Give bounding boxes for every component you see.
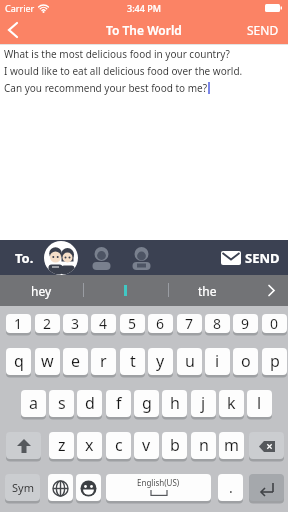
button[interactable]: p bbox=[262, 348, 287, 376]
button[interactable]: 0 bbox=[262, 314, 287, 334]
staticText: y bbox=[156, 350, 165, 372]
button[interactable]: . bbox=[218, 474, 243, 502]
button[interactable]: y bbox=[148, 348, 173, 376]
button[interactable] bbox=[268, 285, 275, 296]
button[interactable] bbox=[249, 432, 284, 460]
button[interactable]: the bbox=[168, 275, 246, 306]
button[interactable]: 7 bbox=[177, 314, 202, 334]
button[interactable]: r bbox=[91, 348, 116, 376]
staticText: d bbox=[85, 392, 95, 414]
staticText: j bbox=[201, 392, 206, 414]
button[interactable]: m bbox=[219, 432, 244, 460]
staticText: l bbox=[257, 392, 262, 414]
staticText: 4 bbox=[99, 314, 108, 333]
button[interactable]: 8 bbox=[205, 314, 230, 334]
staticText: Can you recommend your best food to me? bbox=[4, 81, 208, 95]
button[interactable] bbox=[76, 474, 101, 502]
staticText: h bbox=[170, 392, 180, 414]
button[interactable]: d bbox=[77, 390, 102, 418]
button[interactable] bbox=[91, 247, 112, 270]
staticText: To The World bbox=[106, 22, 182, 38]
staticText: the bbox=[198, 283, 217, 299]
staticText: 2 bbox=[43, 314, 52, 333]
staticText: SEND bbox=[245, 249, 280, 267]
button[interactable]: q bbox=[6, 348, 31, 376]
button[interactable]: 5 bbox=[120, 314, 145, 334]
button[interactable]: hey bbox=[0, 275, 83, 306]
button[interactable]: SEND bbox=[221, 249, 280, 267]
staticText: hey bbox=[31, 283, 52, 299]
staticText: f bbox=[116, 392, 122, 414]
button[interactable]: u bbox=[177, 348, 202, 376]
staticText: 7 bbox=[185, 314, 194, 333]
button[interactable]: English(US) bbox=[106, 474, 211, 502]
staticText: 5 bbox=[128, 314, 137, 333]
staticText: To. bbox=[15, 249, 34, 267]
staticText: 8 bbox=[213, 314, 222, 333]
staticText: What is the most delicious food in your … bbox=[4, 47, 230, 61]
button[interactable]: 9 bbox=[233, 314, 258, 334]
button[interactable]: l bbox=[247, 390, 272, 418]
button[interactable]: f bbox=[106, 390, 131, 418]
button[interactable]: v bbox=[134, 432, 159, 460]
button[interactable]: e bbox=[63, 348, 88, 376]
button[interactable]: SEND bbox=[247, 22, 279, 38]
staticText: Carrier bbox=[5, 2, 35, 14]
staticText: r bbox=[100, 350, 107, 372]
staticText: 6 bbox=[156, 314, 165, 333]
staticText: p bbox=[270, 350, 280, 372]
button[interactable]: h bbox=[162, 390, 187, 418]
button[interactable]: x bbox=[77, 432, 102, 460]
staticText: x bbox=[85, 434, 94, 456]
button[interactable] bbox=[8, 22, 18, 38]
button[interactable]: s bbox=[49, 390, 74, 418]
staticText: t bbox=[130, 350, 136, 372]
staticText: c bbox=[115, 434, 123, 456]
button[interactable]: 2 bbox=[35, 314, 60, 334]
button[interactable]: 4 bbox=[91, 314, 116, 334]
button[interactable]: t bbox=[120, 348, 145, 376]
button[interactable]: j bbox=[191, 390, 216, 418]
staticText: w bbox=[41, 350, 54, 372]
button[interactable]: 6 bbox=[148, 314, 173, 334]
button[interactable] bbox=[48, 474, 73, 502]
staticText: u bbox=[185, 350, 195, 372]
staticText: m bbox=[224, 434, 239, 456]
button[interactable]: 1 bbox=[6, 314, 31, 334]
staticText: b bbox=[170, 434, 180, 456]
staticText: I would like to eat all delicious food o… bbox=[4, 64, 243, 78]
staticText: k bbox=[227, 392, 236, 414]
button[interactable]: k bbox=[219, 390, 244, 418]
staticText: SEND bbox=[247, 22, 279, 38]
button[interactable]: Sym bbox=[5, 474, 40, 502]
staticText: 0 bbox=[270, 314, 279, 333]
staticText: v bbox=[142, 434, 151, 456]
staticText: n bbox=[199, 434, 209, 456]
button[interactable]: o bbox=[233, 348, 258, 376]
button[interactable] bbox=[44, 241, 78, 275]
staticText: i bbox=[215, 350, 220, 372]
button[interactable]: 3 bbox=[63, 314, 88, 334]
button[interactable] bbox=[6, 432, 41, 460]
staticText: 3:44 PM bbox=[127, 2, 161, 14]
staticText: o bbox=[241, 350, 251, 372]
button[interactable]: n bbox=[191, 432, 216, 460]
button[interactable]: z bbox=[49, 432, 74, 460]
staticText: 3 bbox=[71, 314, 80, 333]
staticText: Sym bbox=[12, 480, 34, 495]
staticText: 1 bbox=[14, 314, 23, 333]
button[interactable] bbox=[131, 247, 152, 270]
staticText: s bbox=[58, 392, 66, 414]
button[interactable]: c bbox=[106, 432, 131, 460]
staticText: g bbox=[142, 392, 152, 414]
button[interactable]: b bbox=[162, 432, 187, 460]
button[interactable]: w bbox=[35, 348, 60, 376]
button[interactable]: i bbox=[205, 348, 230, 376]
staticText: 9 bbox=[241, 314, 250, 333]
button[interactable]: g bbox=[134, 390, 159, 418]
button[interactable]: a bbox=[21, 390, 46, 418]
button[interactable] bbox=[249, 474, 284, 502]
staticText: English(US) bbox=[137, 477, 180, 488]
staticText: e bbox=[71, 350, 81, 372]
button[interactable] bbox=[83, 275, 168, 306]
